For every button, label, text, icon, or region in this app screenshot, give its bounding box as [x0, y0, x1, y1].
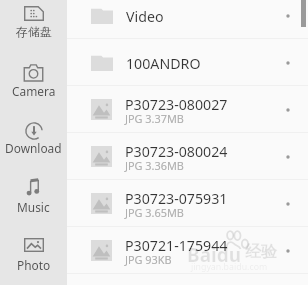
- staticText: JPG 93KB: [125, 252, 172, 267]
- button[interactable]: P30723-080027: [67, 86, 308, 133]
- button[interactable]: More options: [277, 146, 299, 168]
- staticText: 经验: [245, 242, 277, 262]
- staticText: 存储盘: [16, 25, 52, 40]
- staticText: Photo: [17, 257, 51, 273]
- button[interactable]: P30721-175944: [67, 227, 308, 274]
- staticText: Download: [5, 140, 62, 156]
- button[interactable]: More options: [277, 193, 299, 215]
- button[interactable]: More options: [277, 52, 299, 74]
- button[interactable]: 100ANDRO: [67, 39, 308, 86]
- button[interactable]: Photo: [0, 238, 67, 285]
- staticText: JPG 3.36MB: [125, 158, 184, 173]
- staticText: Baidu: [187, 242, 242, 268]
- button[interactable]: More options: [277, 99, 299, 121]
- button[interactable]: P30723-080024: [67, 133, 308, 180]
- button[interactable]: 存储盘: [0, 6, 67, 64]
- button[interactable]: Camera: [0, 64, 67, 122]
- staticText: JPG 3.37MB: [125, 111, 184, 126]
- button[interactable]: Download: [0, 122, 67, 180]
- button[interactable]: More options: [277, 240, 299, 262]
- button[interactable]: Music: [0, 180, 67, 238]
- button[interactable]: More options: [277, 5, 299, 27]
- staticText: P30723-080027: [125, 95, 228, 114]
- staticText: P30723-075931: [125, 189, 228, 208]
- staticText: Music: [17, 199, 50, 215]
- staticText: JPG 3.65MB: [125, 205, 184, 220]
- button[interactable]: Video: [67, 0, 308, 39]
- staticText: P30723-080024: [125, 142, 228, 161]
- staticText: Camera: [12, 83, 56, 99]
- staticText: 100ANDRO: [126, 54, 201, 73]
- button[interactable]: P30723-075931: [67, 180, 308, 227]
- staticText: jingyan.baidu.com: [191, 261, 268, 273]
- staticText: Video: [126, 7, 164, 26]
- staticText: P30721-175944: [125, 236, 228, 255]
